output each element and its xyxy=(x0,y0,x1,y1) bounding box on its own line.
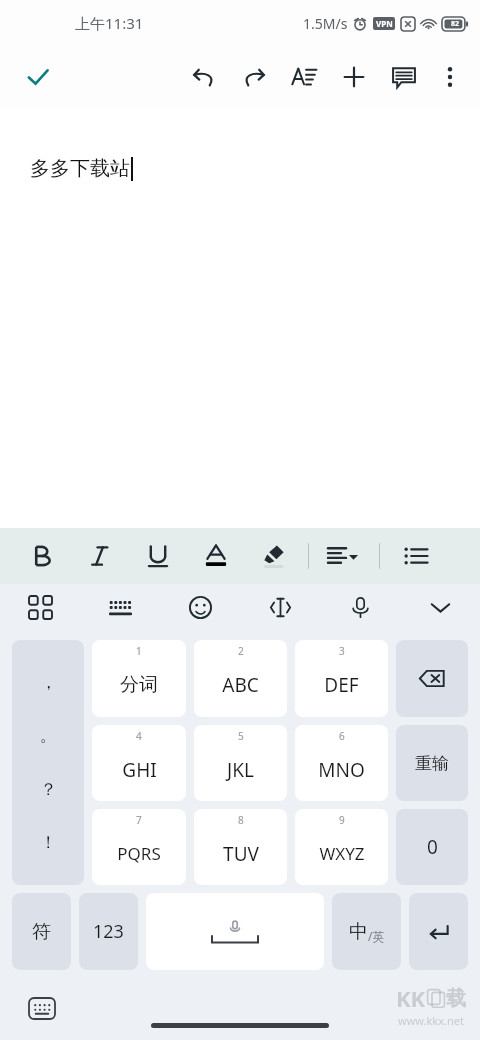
staticText: 多多下载站 xyxy=(30,156,130,181)
staticText: VPN xyxy=(376,18,393,29)
button[interactable]: WXYZ xyxy=(295,809,388,885)
button[interactable]: Comment xyxy=(382,55,426,99)
button[interactable]: Bullet list xyxy=(396,534,436,578)
button[interactable]: 中英切换 xyxy=(332,893,401,970)
staticText: WXYZ xyxy=(319,842,365,865)
button[interactable]: Text format xyxy=(282,55,326,99)
button[interactable]: 123 xyxy=(79,893,138,970)
staticText: 1 xyxy=(136,644,142,658)
button[interactable]: More options xyxy=(428,55,472,99)
staticText: ABC xyxy=(222,672,259,698)
staticText: 符 xyxy=(32,920,51,944)
staticText: KK xyxy=(396,983,426,1013)
button[interactable]: Switch keyboard xyxy=(22,988,62,1028)
staticText: 中 xyxy=(349,920,368,944)
button[interactable]: Punctuation xyxy=(12,640,84,885)
staticText: ！ xyxy=(40,832,57,853)
staticText: PQRS xyxy=(117,842,161,865)
staticText: 5 xyxy=(238,729,244,743)
button[interactable]: DEF xyxy=(295,640,388,717)
staticText: 上午11:31 xyxy=(75,13,144,33)
staticText: ， xyxy=(40,672,57,693)
staticText: 7 xyxy=(136,813,142,827)
button[interactable]: Apps xyxy=(0,584,80,630)
staticText: 1.5M/s xyxy=(303,14,348,33)
button[interactable]: Undo xyxy=(182,55,226,99)
button[interactable]: Italic xyxy=(80,534,120,578)
staticText: ？ xyxy=(40,779,57,800)
button[interactable]: Text select xyxy=(240,584,320,630)
staticText: 重输 xyxy=(415,753,449,774)
staticText: 6 xyxy=(339,729,345,743)
staticText: 8 xyxy=(238,813,244,827)
staticText: /英 xyxy=(368,928,385,944)
button[interactable]: Add xyxy=(332,55,376,99)
staticText: GHI xyxy=(122,757,157,783)
button[interactable]: Keyboard layout xyxy=(80,584,160,630)
button[interactable]: Text color xyxy=(196,534,236,578)
button[interactable]: ABC xyxy=(194,640,287,717)
staticText: 9 xyxy=(339,813,345,827)
staticText: JKL xyxy=(227,757,254,783)
button[interactable]: 符 xyxy=(12,893,71,970)
staticText: 123 xyxy=(93,919,124,944)
button[interactable]: Enter xyxy=(409,893,468,970)
staticText: 。 xyxy=(40,725,57,746)
staticText: 3 xyxy=(339,644,345,658)
staticText: 82 xyxy=(451,19,460,29)
button[interactable]: Hide keyboard xyxy=(400,584,480,630)
staticText: DEF xyxy=(324,672,359,698)
staticText: www.kkx.net xyxy=(398,1013,464,1028)
button[interactable]: JKL xyxy=(194,725,287,801)
button[interactable]: Done xyxy=(14,53,62,101)
button[interactable]: 0 xyxy=(396,809,468,885)
button[interactable]: PQRS xyxy=(92,809,186,885)
button[interactable]: GHI xyxy=(92,725,186,801)
staticText: 载 xyxy=(446,986,466,1011)
button[interactable]: Voice input xyxy=(320,584,400,630)
staticText: 4 xyxy=(136,729,142,743)
staticText: MNO xyxy=(318,757,365,783)
button[interactable]: 重输 xyxy=(396,725,468,801)
staticText: 0 xyxy=(427,834,438,860)
button[interactable]: Emoji xyxy=(160,584,240,630)
button[interactable]: Alignment xyxy=(323,534,363,578)
staticText: 分词 xyxy=(120,673,158,697)
button[interactable]: MNO xyxy=(295,725,388,801)
button[interactable]: Underline xyxy=(138,534,178,578)
button[interactable]: Space xyxy=(146,893,324,970)
button[interactable]: Redo xyxy=(232,55,276,99)
button[interactable]: TUV xyxy=(194,809,287,885)
button[interactable]: Bold xyxy=(22,534,62,578)
staticText: 2 xyxy=(238,644,244,658)
button[interactable]: Backspace xyxy=(396,640,468,717)
button[interactable]: 分词 xyxy=(92,640,186,717)
staticText: TUV xyxy=(223,841,259,867)
button[interactable]: Highlight xyxy=(254,534,294,578)
